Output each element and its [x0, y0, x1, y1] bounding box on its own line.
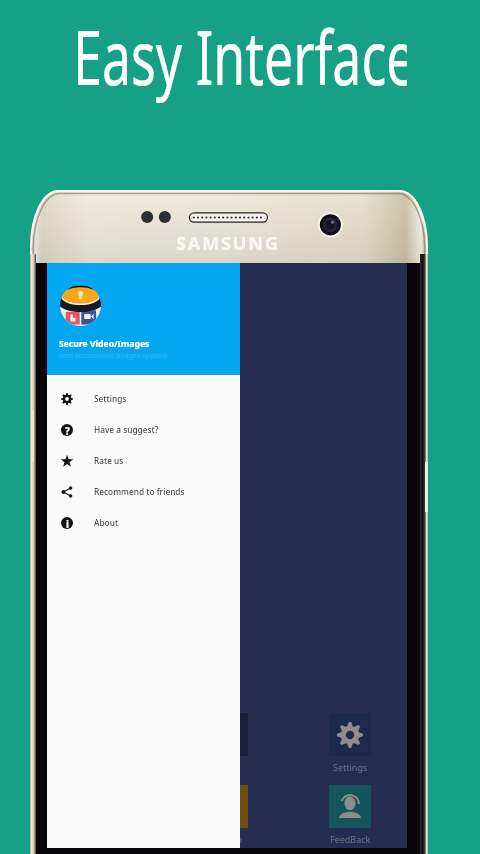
staticText: FeedBack — [330, 833, 371, 845]
staticText: i — [66, 517, 69, 529]
button[interactable]: Settings — [329, 713, 371, 773]
staticText: ? — [65, 424, 70, 436]
staticText: About — [94, 516, 118, 529]
button[interactable]: Settings — [47, 383, 240, 414]
button[interactable]: FeedBack — [329, 785, 371, 845]
button[interactable]: i — [47, 507, 240, 538]
staticText: SAMSUNG — [176, 231, 280, 256]
staticText: Backup — [211, 833, 243, 845]
staticText: Recommend to friends — [94, 485, 185, 498]
staticText: Settings — [333, 761, 368, 773]
button[interactable]: Backup — [206, 785, 248, 845]
staticText: Settings — [94, 392, 126, 405]
staticText: com.securevideo.images.applock — [59, 351, 168, 361]
staticText: Have a suggest? — [94, 423, 159, 436]
button[interactable]: Recommend to friends — [47, 476, 240, 507]
staticText: Easy Interface — [73, 5, 407, 105]
button[interactable]: Rate us — [47, 445, 240, 476]
staticText: Rate us — [94, 454, 124, 467]
button[interactable]: ? — [47, 414, 240, 445]
staticText: Secure Video/Images — [59, 338, 150, 350]
button[interactable]: Video — [206, 713, 248, 773]
